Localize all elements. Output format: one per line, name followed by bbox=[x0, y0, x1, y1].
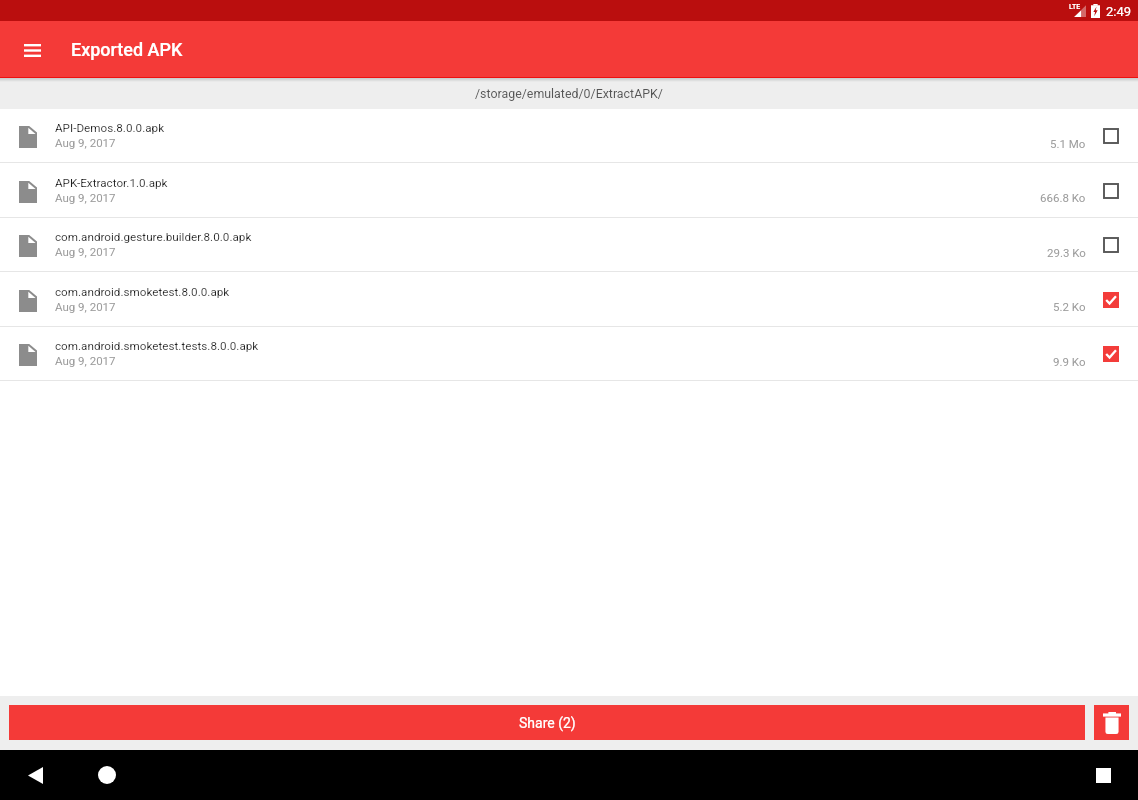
button[interactable]: Select file bbox=[1103, 346, 1119, 362]
button[interactable]: API-Demos.8.0.0.apk bbox=[0, 109, 1138, 163]
button[interactable]: Select file bbox=[1103, 237, 1119, 253]
button[interactable]: Select file bbox=[1103, 292, 1119, 308]
staticText: Aug 9, 2017 bbox=[55, 300, 116, 313]
staticText: com.android.smoketest.tests.8.0.0.apk bbox=[55, 339, 259, 353]
staticText: Aug 9, 2017 bbox=[55, 136, 116, 149]
staticText: 5.2 Ko bbox=[1053, 300, 1086, 313]
staticText: Aug 9, 2017 bbox=[55, 245, 116, 258]
staticText: com.android.smoketest.8.0.0.apk bbox=[55, 285, 230, 299]
staticText: APK-Extractor.1.0.apk bbox=[55, 176, 168, 190]
button[interactable]: Select file bbox=[1103, 183, 1119, 199]
staticText: Aug 9, 2017 bbox=[55, 354, 116, 367]
button[interactable]: Share (2) bbox=[9, 705, 1085, 740]
staticText: 5.1 Mo bbox=[1050, 137, 1086, 150]
button[interactable]: Recent apps bbox=[1081, 753, 1125, 797]
button[interactable]: com.android.gesture.builder.8.0.0.apk bbox=[0, 218, 1138, 272]
staticText: 29.3 Ko bbox=[1047, 246, 1086, 259]
button[interactable]: APK-Extractor.1.0.apk bbox=[0, 163, 1138, 218]
button[interactable]: Select file bbox=[1103, 128, 1119, 144]
button[interactable]: com.android.smoketest.8.0.0.apk bbox=[0, 272, 1138, 327]
staticText: API-Demos.8.0.0.apk bbox=[55, 121, 165, 135]
staticText: 2:49 bbox=[1106, 4, 1132, 19]
staticText: /storage/emulated/0/ExtractAPK/ bbox=[475, 86, 663, 101]
staticText: 9.9 Ko bbox=[1053, 355, 1086, 368]
staticText: Exported APK bbox=[71, 39, 183, 60]
button[interactable]: Home bbox=[85, 753, 129, 797]
staticText: Aug 9, 2017 bbox=[55, 191, 116, 204]
staticText: 666.8 Ko bbox=[1040, 191, 1086, 204]
button[interactable]: com.android.smoketest.tests.8.0.0.apk bbox=[0, 327, 1138, 381]
staticText: Share (2) bbox=[519, 715, 576, 731]
button[interactable]: Open navigation menu bbox=[10, 28, 54, 72]
button[interactable]: Back bbox=[13, 753, 57, 797]
staticText: com.android.gesture.builder.8.0.0.apk bbox=[55, 230, 252, 244]
staticText: LTE bbox=[1069, 3, 1081, 11]
button[interactable]: Delete bbox=[1094, 705, 1129, 740]
